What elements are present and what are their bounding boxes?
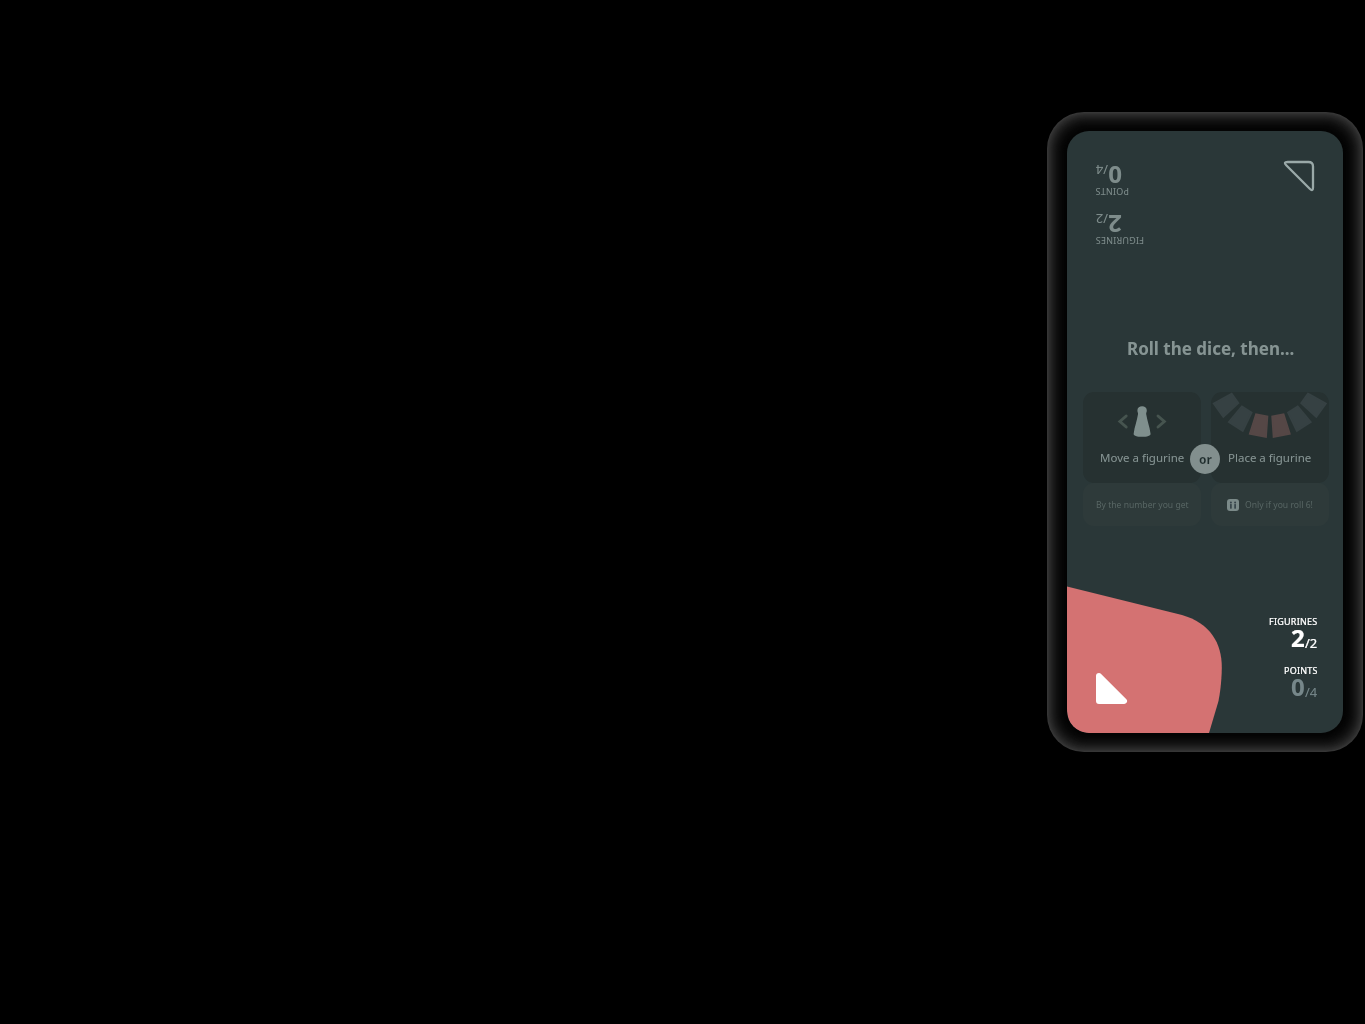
button[interactable]: Roll the dice (1096, 673, 1127, 704)
staticText: POINTS (1095, 186, 1129, 198)
staticText: FIGURINES (1095, 235, 1144, 247)
staticText: Only if you roll 6! (1245, 499, 1313, 511)
button[interactable]: Move a figurine (1083, 392, 1201, 526)
staticText: /4 (1305, 683, 1318, 701)
staticText: FIGURINES (1269, 615, 1318, 627)
staticText: Place a figurine (1228, 450, 1312, 466)
staticText: /2 (1305, 634, 1318, 652)
staticText: 0 (1108, 159, 1122, 192)
button[interactable]: Opponent score (1069, 153, 1144, 247)
staticText: or (1199, 451, 1212, 467)
button[interactable]: Your score (1245, 615, 1318, 709)
staticText: Move a figurine (1100, 450, 1185, 466)
button[interactable]: Turn indicator (1279, 158, 1317, 196)
staticText: Roll the dice, then... (1127, 337, 1295, 360)
button[interactable]: or (1190, 444, 1220, 474)
staticText: 0 (1291, 670, 1305, 703)
button[interactable]: Place a figurine (1211, 392, 1329, 526)
staticText: /4 (1095, 161, 1108, 179)
staticText: 2 (1291, 621, 1305, 654)
staticText: By the number you get (1096, 499, 1189, 511)
staticText: POINTS (1284, 664, 1318, 676)
staticText: 2 (1108, 208, 1122, 241)
staticText: /2 (1095, 210, 1108, 228)
